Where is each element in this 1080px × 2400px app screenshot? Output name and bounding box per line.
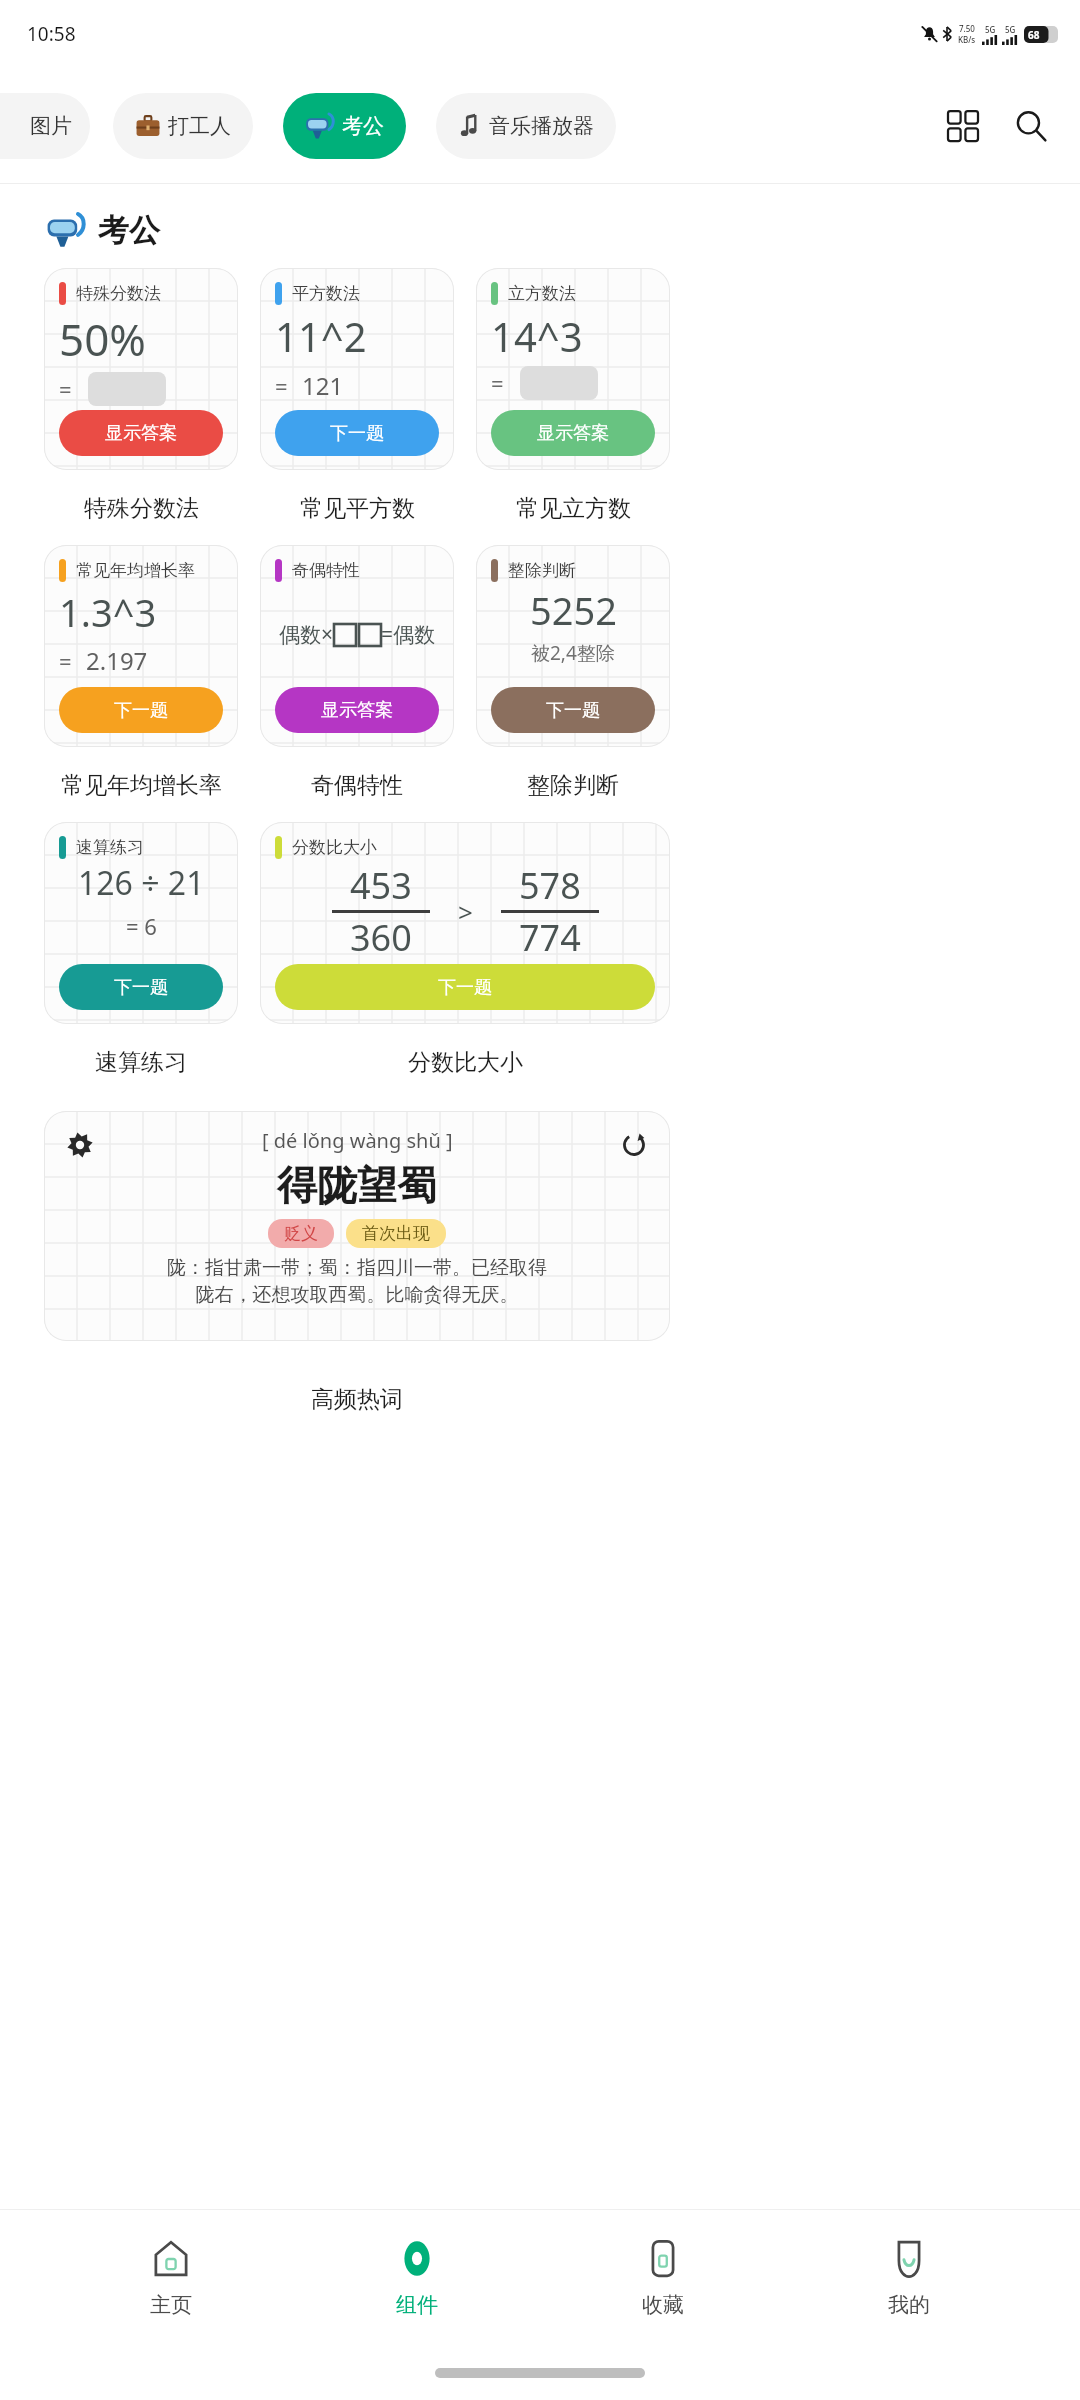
staticText: 考公 (98, 211, 160, 250)
staticText: 578 (519, 861, 581, 910)
staticText: 1.3^3 (59, 586, 157, 638)
staticText: 显示答案 (105, 422, 177, 445)
staticText: 得陇望蜀 (277, 1160, 437, 1210)
staticText: 常见年均增长率 (61, 771, 222, 800)
staticText: 被2,4整除 (531, 640, 615, 666)
staticText: 常见年均增长率 (76, 560, 195, 581)
staticText: 7.50 (959, 23, 975, 34)
staticText: 下一题 (546, 699, 600, 722)
staticText: 453 (350, 861, 412, 910)
staticText: 121 (302, 369, 344, 402)
staticText: 5G (1005, 24, 1016, 35)
staticText: 2.197 (86, 644, 148, 677)
button[interactable]: 下一题 (59, 687, 223, 733)
staticText: 774 (519, 913, 581, 962)
button[interactable]: 下一题 (275, 410, 439, 456)
button[interactable]: Refresh (616, 1127, 652, 1163)
button[interactable]: 立方数法 (476, 268, 670, 470)
staticText: = (59, 374, 72, 404)
button[interactable]: 奇偶特性 (260, 545, 454, 747)
staticText: 收藏 (642, 2292, 684, 2318)
staticText: 组件 (396, 2292, 438, 2318)
staticText: 打工人 (168, 113, 231, 139)
staticText: = (275, 371, 288, 401)
staticText: 偶数× (279, 620, 334, 649)
button[interactable]: 整除判断 (476, 545, 670, 747)
staticText: > (458, 894, 473, 929)
staticText: 分数比大小 (408, 1048, 523, 1077)
staticText: 10:58 (27, 21, 76, 47)
button[interactable]: Settings (44, 1111, 670, 1341)
staticText: 分数比大小 (292, 837, 377, 858)
button[interactable]: 速算练习 (44, 822, 238, 1024)
staticText: [ dé lǒng wàng shǔ ] (262, 1127, 453, 1154)
staticText: 常见平方数 (300, 494, 415, 523)
button[interactable]: 分数比大小 (260, 822, 670, 1024)
staticText: 特殊分数法 (84, 494, 199, 523)
staticText: 360 (350, 913, 412, 962)
button[interactable]: 下一题 (275, 964, 655, 1010)
button[interactable]: Grid view (934, 97, 992, 155)
staticText: 高频热词 (311, 1385, 403, 1414)
button[interactable]: 平方数法 (260, 268, 454, 470)
staticText: 下一题 (330, 422, 384, 445)
button[interactable]: 打工人 (113, 93, 253, 159)
staticText: = (491, 368, 504, 398)
button[interactable]: 组件 (342, 2232, 492, 2324)
staticText: 考公 (342, 113, 384, 139)
staticText: 图片 (30, 113, 72, 139)
staticText: 下一题 (114, 699, 168, 722)
staticText: 下一题 (114, 976, 168, 999)
staticText: 11^2 (275, 309, 367, 363)
button[interactable]: 图片 (0, 93, 90, 159)
staticText: 5252 (530, 584, 617, 636)
button[interactable]: 显示答案 (59, 410, 223, 456)
staticText: 速算练习 (76, 837, 144, 858)
button[interactable]: Search (1002, 97, 1060, 155)
button[interactable]: 下一题 (59, 964, 223, 1010)
button[interactable]: Settings (62, 1127, 98, 1163)
button[interactable]: 考公 (283, 93, 406, 159)
staticText: =偶数 (381, 620, 436, 649)
staticText: 奇偶特性 (292, 560, 360, 581)
button[interactable]: 显示答案 (275, 687, 439, 733)
staticText: 下一题 (438, 976, 492, 999)
button[interactable]: 常见年均增长率 (44, 545, 238, 747)
staticText: 贬义 (284, 1223, 318, 1244)
staticText: 显示答案 (537, 422, 609, 445)
staticText: = (59, 646, 72, 676)
button[interactable]: 显示答案 (491, 410, 655, 456)
staticText: 特殊分数法 (76, 283, 161, 304)
staticText: 显示答案 (321, 699, 393, 722)
button[interactable]: 我的 (834, 2232, 984, 2324)
staticText: KB/s (958, 34, 976, 45)
staticText: 整除判断 (508, 560, 576, 581)
staticText: 立方数法 (508, 283, 576, 304)
staticText: 首次出现 (362, 1223, 430, 1244)
button[interactable]: 特殊分数法 (44, 268, 238, 470)
staticText: 整除判断 (527, 771, 619, 800)
button[interactable]: 下一题 (491, 687, 655, 733)
staticText: = 6 (126, 911, 157, 941)
staticText: 奇偶特性 (311, 771, 403, 800)
staticText: 主页 (150, 2292, 192, 2318)
staticText: 14^3 (491, 309, 583, 363)
button[interactable]: 主页 (96, 2232, 246, 2324)
staticText: 常见立方数 (516, 494, 631, 523)
staticText: 5G (985, 24, 996, 35)
staticText: 我的 (888, 2292, 930, 2318)
staticText: 陇：指甘肃一带；蜀：指四川一带。已经取得 陇右，还想攻取西蜀。比喻贪得无厌。 (167, 1256, 547, 1307)
staticText: 126 ÷ 21 (78, 861, 205, 905)
staticText: 音乐播放器 (489, 113, 594, 139)
button[interactable]: 音乐播放器 (436, 93, 616, 159)
button[interactable]: 收藏 (588, 2232, 738, 2324)
staticText: 68 (1028, 28, 1040, 42)
staticText: 速算练习 (95, 1048, 187, 1077)
staticText: 50% (59, 309, 146, 369)
staticText: 平方数法 (292, 283, 360, 304)
